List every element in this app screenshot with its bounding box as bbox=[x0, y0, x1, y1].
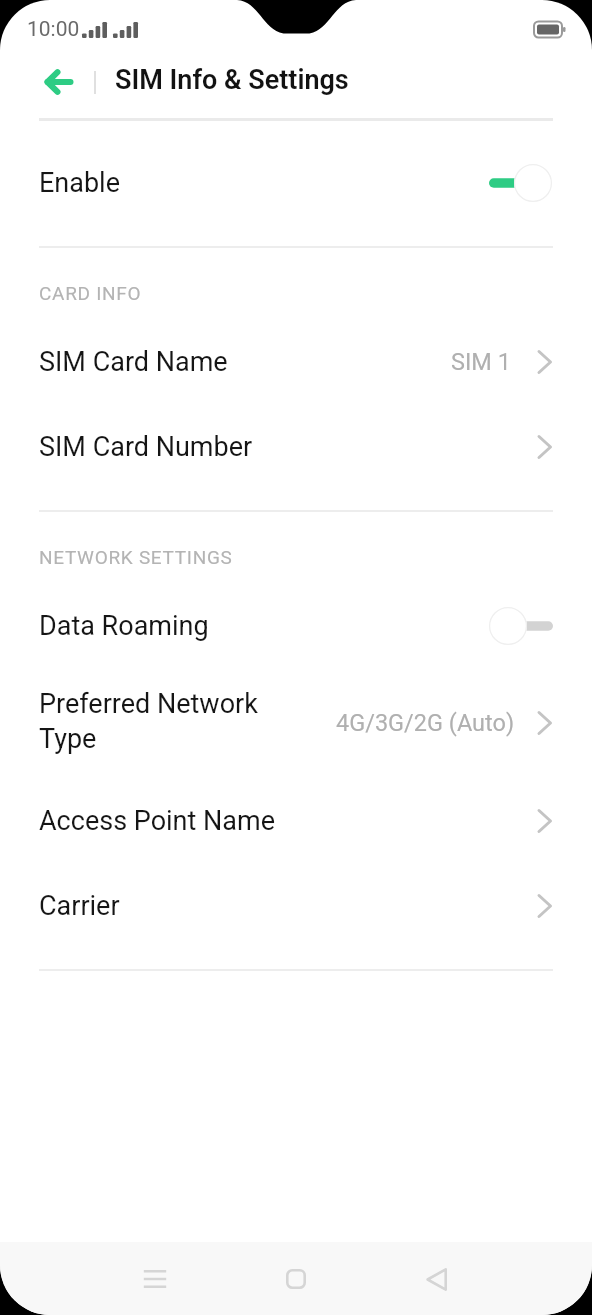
staticText: Access Point Name bbox=[39, 805, 275, 837]
button[interactable]: Carrier bbox=[0, 864, 592, 948]
staticText: SIM Card Number bbox=[39, 431, 253, 463]
button[interactable]: Access Point Name bbox=[0, 779, 592, 863]
button[interactable]: Data roaming toggle bbox=[489, 598, 579, 654]
button[interactable]: Recents bbox=[120, 1244, 190, 1314]
button[interactable]: Back bbox=[36, 60, 80, 104]
button[interactable]: Enable toggle bbox=[470, 155, 560, 211]
staticText: SIM Info & Settings bbox=[115, 64, 349, 96]
staticText: Data Roaming bbox=[39, 610, 209, 642]
button[interactable]: Preferred Network Type bbox=[0, 664, 592, 783]
staticText: SIM 1 bbox=[451, 348, 511, 376]
button[interactable]: SIM Card Number bbox=[0, 405, 592, 489]
staticText: Carrier bbox=[39, 890, 120, 922]
staticText: Preferred Network Type bbox=[39, 688, 258, 754]
staticText: SIM Card Name bbox=[39, 346, 228, 378]
button[interactable]: Data Roaming bbox=[0, 584, 592, 668]
button[interactable]: Back bbox=[401, 1244, 471, 1314]
staticText: NETWORK SETTINGS bbox=[39, 546, 233, 568]
button[interactable]: Home bbox=[261, 1244, 331, 1314]
button[interactable]: SIM Card Name bbox=[0, 320, 592, 404]
button[interactable]: Enable bbox=[0, 141, 592, 225]
staticText: 4G/3G/2G (Auto) bbox=[336, 709, 515, 737]
staticText: CARD INFO bbox=[39, 282, 142, 304]
staticText: 10:00 bbox=[27, 17, 80, 42]
staticText: Enable bbox=[39, 167, 120, 199]
